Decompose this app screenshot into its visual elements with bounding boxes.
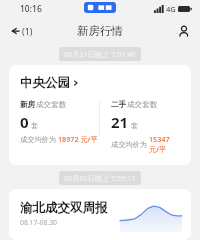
staticText: 新房 (20, 100, 36, 110)
staticText: 0 (20, 112, 29, 132)
staticText: 成交均价为 (111, 139, 149, 149)
button[interactable]: Back (0, 22, 39, 40)
staticText: 18972 元/平 (58, 134, 98, 144)
staticText: 二手 (111, 100, 127, 110)
staticText: 4G (166, 4, 176, 14)
staticText: 中央公园 (20, 75, 70, 91)
button[interactable]: 渝北成交双周报 (9, 189, 191, 240)
staticText: 套 (31, 121, 38, 130)
staticText: 成交套数 (36, 100, 67, 110)
staticText: 成交套数 (127, 100, 158, 110)
button[interactable]: 中央公园 (9, 65, 191, 165)
button[interactable]: Profile (172, 22, 200, 40)
staticText: (1) (22, 25, 33, 37)
staticText: 新房行情 (77, 24, 123, 38)
staticText: 08.17-08.30 (20, 218, 57, 227)
staticText: 09月02日晚上 7:55:13 (64, 173, 136, 183)
staticText: 08月21日晚上 7:01:48 (64, 49, 136, 59)
staticText: 渝北成交双周报 (20, 200, 108, 216)
staticText: 套 (131, 121, 138, 130)
staticText: 21 (111, 112, 129, 132)
staticText: 成交均价为 (20, 134, 58, 144)
staticText: 10:16 (20, 3, 42, 15)
staticText: 15347 元/平 (149, 134, 180, 154)
